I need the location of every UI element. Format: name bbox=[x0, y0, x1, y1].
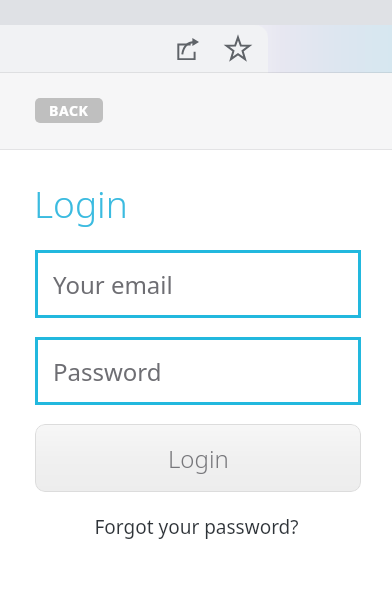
button[interactable]: Forgot your password? bbox=[0, 514, 392, 540]
button[interactable]: Password bbox=[35, 337, 361, 405]
button[interactable]: Login bbox=[35, 424, 361, 492]
button[interactable]: Your email bbox=[35, 250, 361, 318]
button[interactable]: Bookmark bbox=[218, 29, 258, 69]
staticText: Your email bbox=[53, 268, 173, 301]
button[interactable]: Share bbox=[168, 29, 208, 69]
staticText: Login bbox=[34, 178, 128, 228]
staticText: Forgot your password? bbox=[94, 514, 299, 540]
staticText: BACK bbox=[49, 101, 89, 120]
button[interactable]: Share bbox=[0, 25, 268, 73]
staticText: Login bbox=[168, 442, 229, 475]
staticText: Password bbox=[53, 355, 162, 388]
button[interactable]: BACK bbox=[35, 98, 103, 123]
